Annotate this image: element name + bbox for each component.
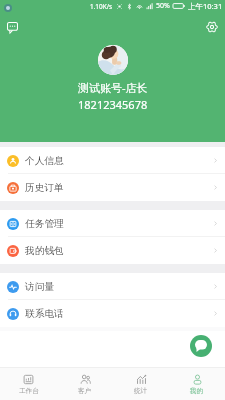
staticText: 18212345678 [78, 97, 148, 112]
staticText: 测试账号-店长 [78, 80, 148, 95]
button[interactable]: 任务管理 [0, 210, 225, 237]
staticText: 上午10:31 [188, 1, 223, 11]
staticText: 我的 [190, 387, 204, 395]
button[interactable]: 我的钱包 [0, 237, 225, 264]
staticText: 统计 [134, 387, 148, 395]
staticText: 50% [156, 1, 170, 11]
staticText: 客户 [78, 387, 92, 395]
staticText: 历史订单 [25, 182, 64, 194]
staticText: 我的钱包 [25, 245, 64, 257]
button[interactable]: 联系电话 [0, 300, 225, 327]
staticText: 联系电话 [25, 308, 64, 320]
button[interactable]: 统计 [113, 374, 169, 395]
staticText: 任务管理 [25, 218, 64, 230]
button[interactable] [98, 45, 128, 75]
button[interactable]: 客户 [57, 374, 113, 395]
button[interactable]: Messages [2, 17, 22, 37]
button[interactable]: 访问量 [0, 273, 225, 300]
button[interactable]: Chat [190, 335, 212, 357]
button[interactable]: 工作台 [0, 374, 57, 395]
staticText: 访问量 [25, 281, 55, 293]
staticText: 1.10K/s [90, 2, 113, 11]
button[interactable]: 个人信息 [0, 147, 225, 174]
staticText: 个人信息 [25, 155, 64, 167]
staticText: 工作台 [19, 387, 39, 395]
button[interactable]: Settings [202, 17, 222, 37]
button[interactable]: 历史订单 [0, 174, 225, 201]
button[interactable]: 我的 [169, 374, 225, 395]
